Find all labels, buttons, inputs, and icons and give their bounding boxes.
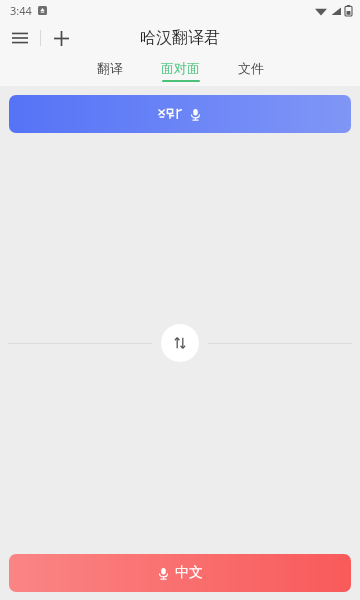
staticText: 中文 <box>175 564 203 582</box>
staticText: 面对面 <box>161 60 200 76</box>
button[interactable]: 翻译 <box>91 60 129 82</box>
button[interactable]: 文件 <box>232 60 270 82</box>
button[interactable]: Menu <box>0 20 40 56</box>
button[interactable]: Swap languages <box>161 324 199 362</box>
staticText: 哈汉翻译君 <box>140 28 220 48</box>
staticText: 文件 <box>238 60 264 76</box>
staticText: 翻译 <box>97 60 123 76</box>
button[interactable] <box>9 95 351 133</box>
button[interactable]: 面对面 <box>155 60 206 82</box>
button[interactable]: Add <box>41 20 81 56</box>
button[interactable]: 中文 <box>9 554 351 592</box>
staticText: 3:44 <box>10 3 32 18</box>
